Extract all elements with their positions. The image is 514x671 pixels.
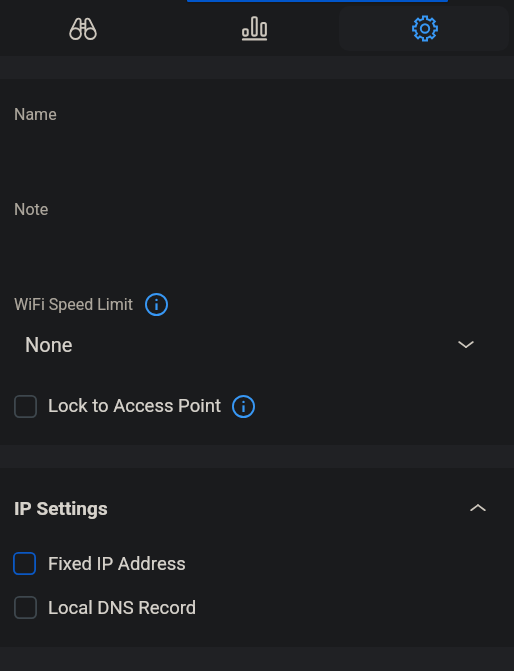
button[interactable]: Statistics: [240, 6, 268, 51]
button[interactable]: Settings: [410, 6, 439, 51]
button[interactable]: Fixed IP Address: [0, 546, 514, 581]
staticText: None: [25, 333, 73, 356]
staticText: Note: [14, 200, 49, 219]
staticText: Lock to Access Point: [48, 395, 221, 417]
staticText: Fixed IP Address: [48, 553, 186, 575]
staticText: Local DNS Record: [48, 597, 197, 619]
button[interactable]: None: [0, 322, 514, 366]
button[interactable]: IP Settings: [0, 488, 514, 528]
button[interactable]: Info about WiFi speed limit: [144, 292, 169, 317]
staticText: Name: [14, 105, 57, 124]
button[interactable]: Local DNS Record: [0, 590, 514, 625]
button[interactable]: Lock to Access Point: [0, 388, 514, 424]
button[interactable]: Info about locking to access point: [231, 394, 255, 418]
staticText: WiFi Speed Limit: [14, 295, 133, 314]
staticText: IP Settings: [14, 497, 108, 519]
button[interactable]: Discover: [69, 6, 97, 51]
